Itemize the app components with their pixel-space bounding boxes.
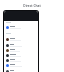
- button[interactable]: [6, 37, 36, 42]
- button[interactable]: [6, 53, 36, 58]
- staticText: Direct Chat: [23, 4, 41, 8]
- button[interactable]: [6, 43, 36, 48]
- button[interactable]: [6, 69, 36, 72]
- button[interactable]: [6, 25, 36, 30]
- button[interactable]: [6, 63, 36, 68]
- button[interactable]: [6, 48, 36, 53]
- button[interactable]: [6, 58, 36, 63]
